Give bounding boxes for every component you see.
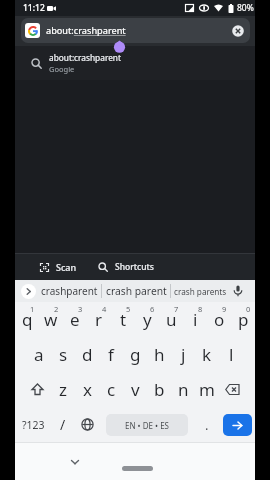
staticText: f bbox=[108, 343, 114, 366]
staticText: . bbox=[205, 416, 209, 434]
staticText: u bbox=[166, 308, 177, 331]
button[interactable]: e bbox=[63, 302, 87, 337]
button[interactable]: r bbox=[87, 302, 111, 337]
button[interactable]: k bbox=[195, 337, 219, 372]
staticText: 0 bbox=[246, 304, 251, 314]
staticText: n bbox=[178, 378, 189, 401]
button[interactable]: t bbox=[111, 302, 135, 337]
staticText: Shortcuts bbox=[115, 261, 154, 273]
staticText: p bbox=[238, 308, 249, 331]
staticText: EN • DE • ES bbox=[125, 420, 169, 431]
staticText: 7 bbox=[174, 304, 179, 314]
button[interactable]: x bbox=[75, 372, 99, 407]
staticText: r bbox=[95, 308, 103, 331]
staticText: c bbox=[107, 378, 116, 401]
button[interactable]: Shortcuts bbox=[98, 261, 154, 273]
staticText: v bbox=[131, 378, 140, 401]
button[interactable]: f bbox=[99, 337, 123, 372]
button[interactable]: about:crashparent bbox=[15, 46, 255, 80]
button[interactable]: d bbox=[75, 337, 99, 372]
button[interactable]: v bbox=[123, 372, 147, 407]
button[interactable]: a bbox=[27, 337, 51, 372]
staticText: j bbox=[181, 343, 186, 366]
staticText: b bbox=[154, 378, 165, 401]
staticText: 11:12 bbox=[23, 2, 45, 14]
button[interactable] bbox=[21, 284, 36, 299]
staticText: i bbox=[193, 308, 198, 331]
staticText: Google bbox=[49, 64, 75, 74]
button[interactable]: u bbox=[159, 302, 183, 337]
staticText: w bbox=[44, 308, 58, 331]
staticText: h bbox=[154, 343, 165, 366]
button[interactable]: o bbox=[207, 302, 231, 337]
staticText: crash parents bbox=[174, 286, 227, 297]
staticText: 5 bbox=[126, 304, 131, 314]
staticText: crash parent bbox=[106, 284, 167, 298]
button[interactable]: h bbox=[147, 337, 171, 372]
staticText: a bbox=[34, 343, 44, 366]
staticText: 8 bbox=[198, 304, 203, 314]
staticText: l bbox=[229, 343, 234, 366]
staticText: about:crashparent bbox=[49, 52, 121, 63]
staticText: / bbox=[60, 415, 66, 434]
staticText: about:crashparent bbox=[46, 24, 126, 37]
button[interactable]: crash parents bbox=[171, 280, 230, 302]
staticText: z bbox=[59, 378, 67, 401]
staticText: t bbox=[120, 308, 127, 331]
button[interactable]: s bbox=[51, 337, 75, 372]
button[interactable]: w bbox=[39, 302, 63, 337]
button[interactable]: about:crashparent bbox=[21, 18, 250, 43]
button[interactable]: j bbox=[171, 337, 195, 372]
button[interactable]: crashparent bbox=[38, 280, 101, 302]
button[interactable]: / bbox=[51, 407, 75, 442]
staticText: m bbox=[199, 378, 215, 401]
staticText: 6 bbox=[150, 304, 155, 314]
staticText: 4 bbox=[102, 304, 107, 314]
button[interactable]: q bbox=[15, 302, 39, 337]
button[interactable] bbox=[232, 25, 244, 37]
staticText: x bbox=[83, 378, 92, 401]
button[interactable]: ?123 bbox=[15, 407, 51, 442]
button[interactable]: n bbox=[171, 372, 195, 407]
button[interactable]: y bbox=[135, 302, 159, 337]
staticText: 9 bbox=[222, 304, 227, 314]
button[interactable] bbox=[70, 459, 80, 465]
button[interactable]: EN • DE • ES bbox=[99, 407, 195, 442]
button[interactable]: p bbox=[231, 302, 255, 337]
staticText: crashparent bbox=[41, 284, 98, 298]
button[interactable]: b bbox=[147, 372, 171, 407]
button[interactable]: crash parent bbox=[102, 280, 170, 302]
staticText: y bbox=[143, 308, 152, 331]
staticText: k bbox=[202, 343, 212, 366]
staticText: s bbox=[59, 343, 68, 366]
staticText: d bbox=[82, 343, 93, 366]
staticText: e bbox=[70, 308, 80, 331]
button[interactable]: c bbox=[99, 372, 123, 407]
button[interactable] bbox=[219, 372, 255, 407]
button[interactable]: . bbox=[195, 407, 219, 442]
button[interactable] bbox=[15, 372, 51, 407]
staticText: 80% bbox=[237, 2, 254, 14]
staticText: q bbox=[22, 308, 33, 331]
button[interactable]: Scan bbox=[40, 261, 77, 273]
staticText: o bbox=[214, 308, 225, 331]
button[interactable]: i bbox=[183, 302, 207, 337]
button[interactable]: l bbox=[219, 337, 243, 372]
staticText: Scan bbox=[56, 261, 77, 273]
button[interactable]: m bbox=[195, 372, 219, 407]
staticText: ?123 bbox=[22, 418, 45, 432]
staticText: 3 bbox=[78, 304, 83, 314]
staticText: 1 bbox=[30, 304, 35, 314]
staticText: g bbox=[130, 343, 141, 366]
button[interactable] bbox=[75, 407, 99, 442]
button[interactable] bbox=[219, 407, 255, 442]
staticText: 2 bbox=[54, 304, 59, 314]
button[interactable] bbox=[230, 280, 246, 302]
button[interactable] bbox=[122, 466, 153, 471]
button[interactable]: g bbox=[123, 337, 147, 372]
button[interactable]: z bbox=[51, 372, 75, 407]
